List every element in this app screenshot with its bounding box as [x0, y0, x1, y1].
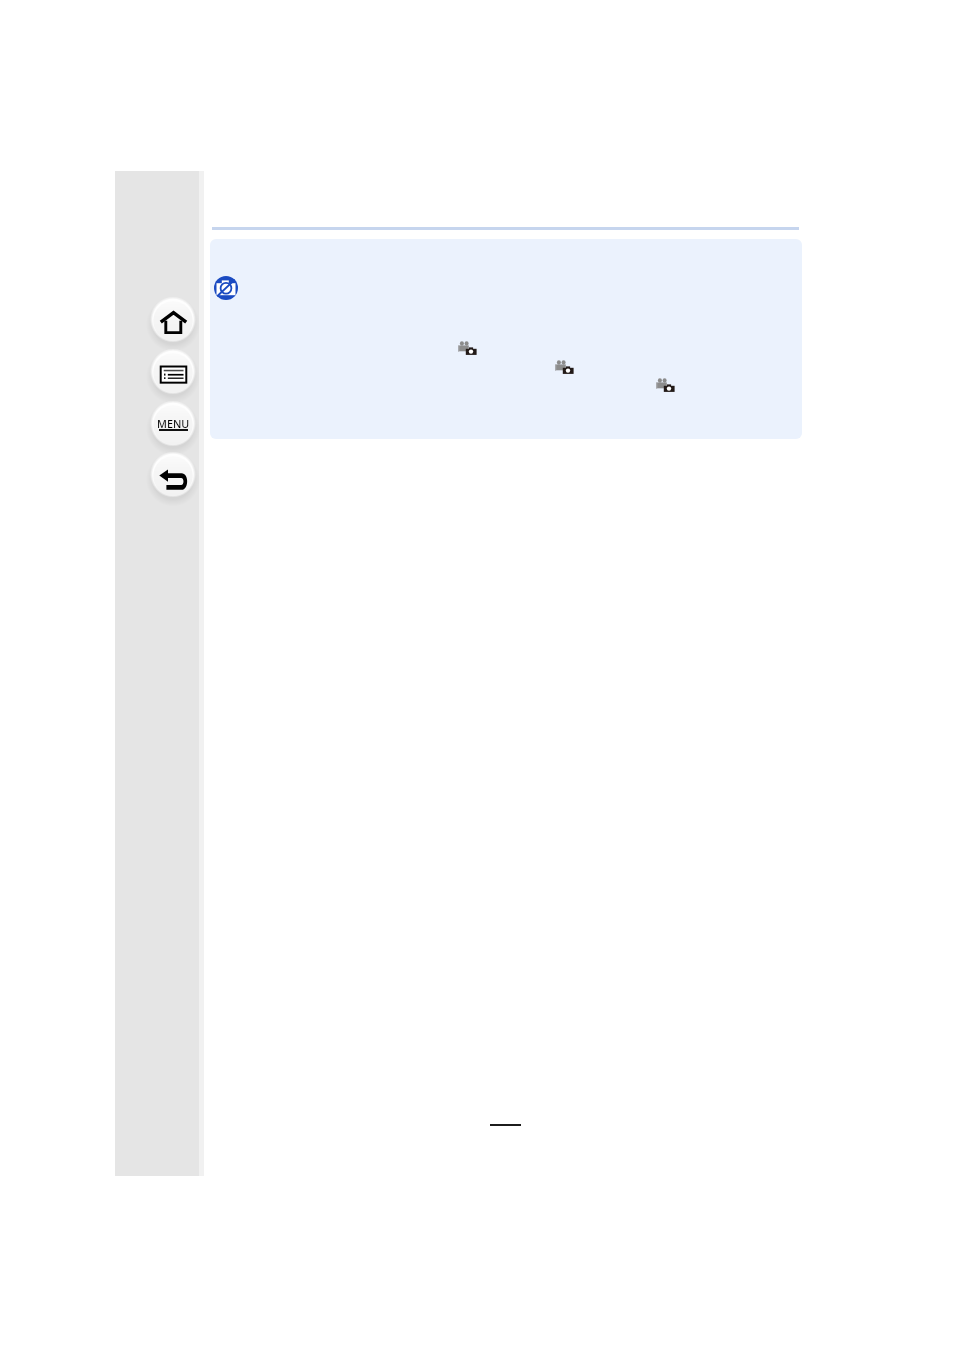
button[interactable]: Table of contents: [142, 342, 204, 404]
button[interactable]: Menu: [142, 394, 204, 456]
staticText: MENU: [157, 416, 190, 431]
button[interactable]: Back: [142, 445, 204, 507]
button[interactable]: Home: [142, 290, 204, 352]
